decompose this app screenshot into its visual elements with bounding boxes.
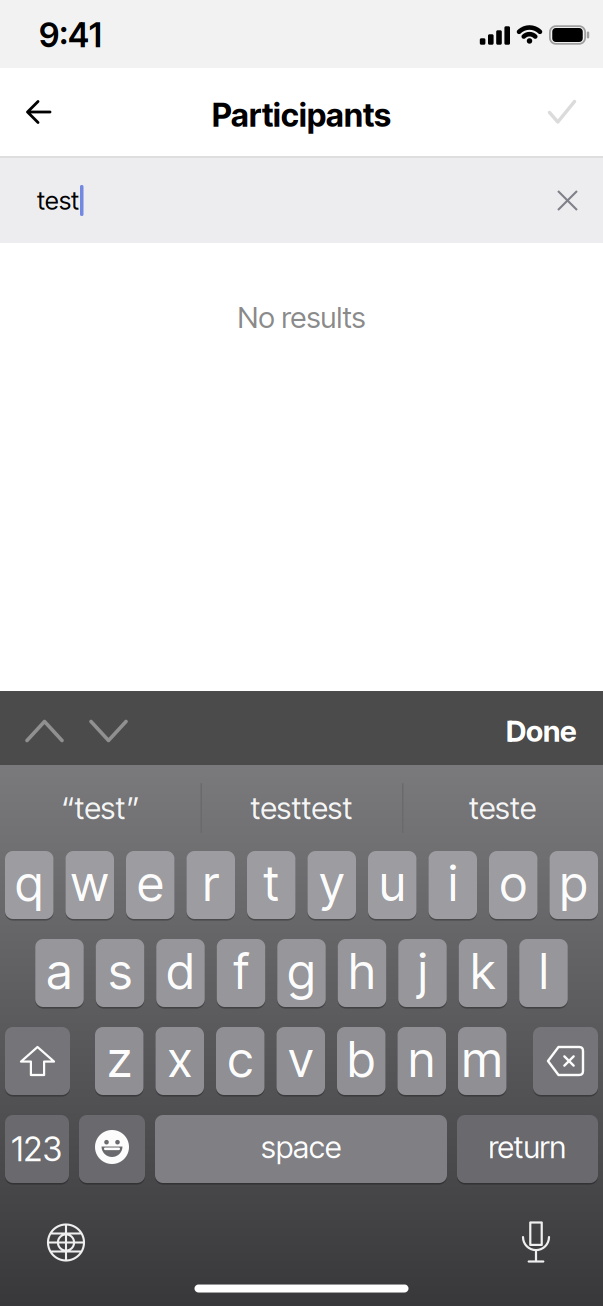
button[interactable]: o <box>489 851 537 919</box>
staticText: y <box>319 854 344 912</box>
staticText: z <box>107 1030 131 1088</box>
staticText: testtest <box>250 790 352 826</box>
staticText: x <box>168 1030 192 1088</box>
staticText: f <box>233 942 248 1000</box>
staticText: r <box>203 854 219 912</box>
button[interactable]: Delete <box>533 1027 598 1095</box>
button[interactable]: Clear search <box>546 179 589 222</box>
button[interactable]: Back <box>0 80 50 143</box>
button[interactable]: testtest <box>201 765 402 851</box>
staticText: Done <box>506 714 577 748</box>
staticText: n <box>408 1030 435 1088</box>
staticText: d <box>166 942 194 1000</box>
button[interactable]: f <box>217 939 265 1007</box>
button[interactable]: Previous field <box>27 709 62 752</box>
button[interactable]: teste <box>402 765 603 851</box>
button[interactable]: p <box>549 851 598 919</box>
button[interactable]: d <box>156 939 205 1007</box>
button[interactable]: space <box>155 1115 447 1183</box>
button[interactable]: a <box>35 939 84 1007</box>
button[interactable]: y <box>307 851 356 919</box>
button[interactable]: i <box>428 851 477 919</box>
staticText: e <box>137 854 163 912</box>
staticText: s <box>108 942 131 1000</box>
button[interactable]: g <box>277 939 326 1007</box>
staticText: i <box>448 854 457 912</box>
staticText: a <box>46 942 72 1000</box>
button[interactable]: n <box>397 1027 446 1095</box>
button[interactable]: Done <box>506 714 577 748</box>
button[interactable]: x <box>155 1027 204 1095</box>
button[interactable]: “test” <box>0 765 201 851</box>
button[interactable]: t <box>247 851 295 919</box>
staticText: h <box>348 942 375 1000</box>
button[interactable]: e <box>126 851 174 919</box>
staticText: test <box>37 186 79 215</box>
button[interactable]: k <box>459 939 507 1007</box>
staticText: Participants <box>212 96 391 134</box>
button[interactable]: r <box>186 851 235 919</box>
button[interactable]: 123 <box>5 1115 69 1183</box>
staticText: g <box>287 942 315 1000</box>
button[interactable]: Confirm <box>548 80 603 144</box>
button[interactable]: s <box>96 939 144 1007</box>
button[interactable]: c <box>216 1027 264 1095</box>
staticText: w <box>71 854 109 912</box>
button[interactable]: w <box>65 851 114 919</box>
button[interactable]: return <box>457 1115 598 1183</box>
button[interactable]: v <box>276 1027 325 1095</box>
button[interactable]: h <box>338 939 386 1007</box>
button[interactable]: u <box>368 851 416 919</box>
button[interactable]: m <box>458 1027 506 1095</box>
staticText: “test” <box>61 790 139 826</box>
staticText: b <box>347 1030 375 1088</box>
staticText: No results <box>237 300 365 335</box>
staticText: j <box>418 942 427 1000</box>
staticText: l <box>539 942 548 1000</box>
button[interactable]: l <box>519 939 568 1007</box>
button[interactable]: Next field <box>91 709 126 752</box>
button[interactable]: Dictation <box>523 1222 603 1262</box>
button[interactable]: z <box>95 1027 143 1095</box>
button[interactable]: b <box>337 1027 385 1095</box>
staticText: u <box>379 854 405 912</box>
button[interactable]: j <box>398 939 447 1007</box>
staticText: k <box>470 942 495 1000</box>
staticText: 9:41 <box>39 15 102 55</box>
staticText: 123 <box>11 1129 62 1169</box>
button[interactable]: Emoji <box>79 1115 145 1183</box>
staticText: q <box>15 854 43 912</box>
staticText: t <box>263 854 279 912</box>
button[interactable]: Next keyboard <box>0 1224 84 1260</box>
staticText: space <box>261 1129 341 1165</box>
staticText: return <box>488 1129 566 1165</box>
staticText: v <box>288 1030 313 1088</box>
staticText: p <box>560 854 588 912</box>
staticText: teste <box>469 790 536 826</box>
staticText: c <box>228 1030 253 1088</box>
staticText: m <box>462 1030 503 1088</box>
staticText: o <box>500 854 527 912</box>
button[interactable]: Shift <box>5 1027 70 1095</box>
button[interactable]: q <box>5 851 53 919</box>
